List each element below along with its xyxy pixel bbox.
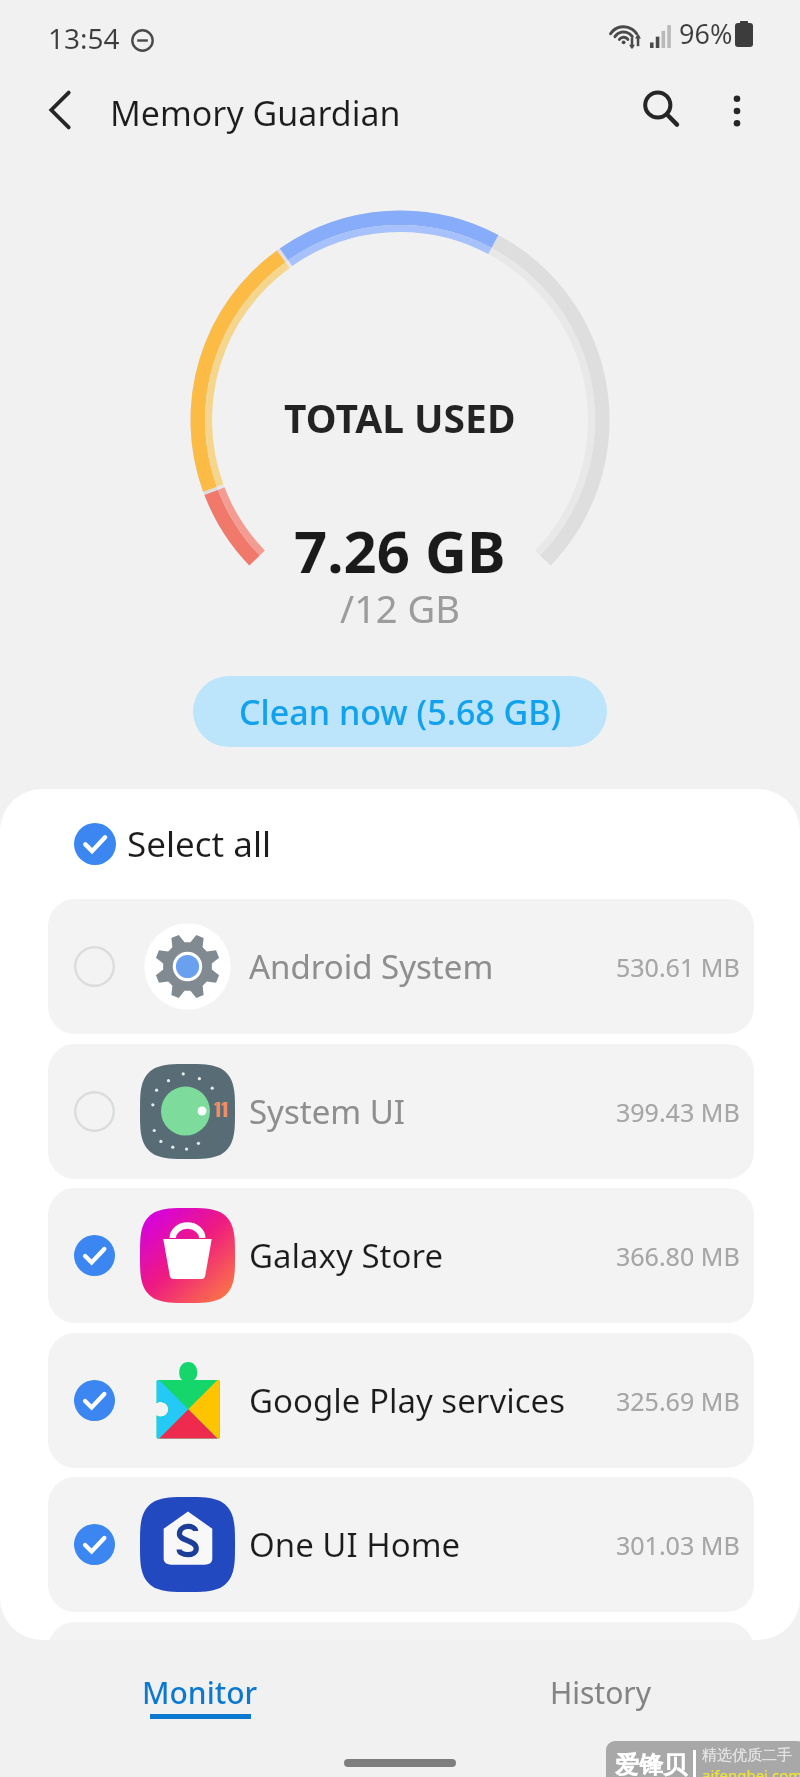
button[interactable]: More options xyxy=(706,80,768,142)
button[interactable]: Search xyxy=(630,78,692,140)
staticText: Galaxy Store xyxy=(249,1233,444,1278)
staticText: 96% xyxy=(679,15,733,52)
staticText: Android System xyxy=(249,944,494,989)
button[interactable]: Google Play services xyxy=(48,1333,754,1468)
button[interactable]: Android System xyxy=(48,899,754,1034)
staticText: 精选优质二手 xyxy=(702,1746,792,1765)
staticText: Memory Guardian xyxy=(110,90,401,136)
button[interactable]: Select all xyxy=(48,806,368,882)
staticText: 530.61 MB xyxy=(616,950,740,984)
button[interactable]: History xyxy=(461,1658,741,1730)
staticText: One UI Home xyxy=(249,1522,461,1567)
staticText: TOTAL USED xyxy=(284,391,516,444)
staticText: Select all xyxy=(127,820,271,868)
button[interactable]: Monitor xyxy=(60,1658,340,1730)
staticText: /12 GB xyxy=(340,582,460,634)
button[interactable]: Galaxy Store xyxy=(48,1188,754,1323)
staticText: 399.43 MB xyxy=(616,1095,740,1129)
staticText: History xyxy=(550,1672,652,1713)
staticText: aifengbei.com xyxy=(702,1765,800,1777)
staticText: 7.26 GB xyxy=(294,511,506,590)
button[interactable]: Back xyxy=(29,79,91,141)
staticText: 325.69 MB xyxy=(616,1384,740,1418)
staticText: 爱锋贝 xyxy=(615,1750,687,1777)
staticText: 366.80 MB xyxy=(616,1239,740,1273)
staticText: Google Play services xyxy=(249,1378,565,1423)
staticText: Clean now (5.68 GB) xyxy=(239,689,562,735)
staticText: System UI xyxy=(249,1089,406,1134)
staticText: 301.03 MB xyxy=(616,1528,740,1562)
staticText: Monitor xyxy=(142,1672,258,1713)
button[interactable]: Clean now (5.68 GB) xyxy=(193,676,607,747)
button[interactable]: One UI Home xyxy=(48,1477,754,1612)
button[interactable]: System UI xyxy=(48,1044,754,1179)
staticText: 13:54 xyxy=(48,19,120,57)
